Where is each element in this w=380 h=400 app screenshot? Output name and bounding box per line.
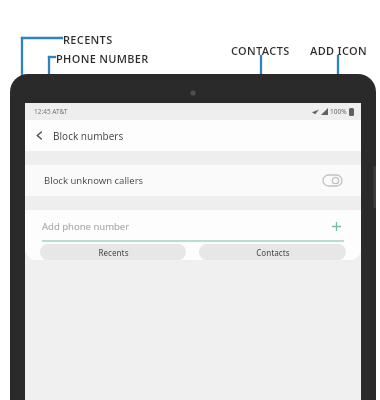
staticText: Block numbers <box>53 129 124 143</box>
staticText: Contacts <box>256 247 290 258</box>
staticText: Block unknown callers <box>44 174 144 187</box>
staticText: Add phone number <box>42 220 130 233</box>
button[interactable]: Add phone number <box>42 210 329 243</box>
staticText: Recents <box>98 247 129 258</box>
button[interactable]: Recents <box>40 244 186 260</box>
button[interactable]: Contacts <box>199 244 346 260</box>
staticText: 12:45 AT&T <box>34 107 68 116</box>
button[interactable]: Block unknown callers toggle <box>323 175 342 186</box>
button[interactable]: Block unknown callers <box>25 165 361 196</box>
staticText: 100% <box>330 107 347 116</box>
button[interactable]: Back <box>25 120 361 151</box>
staticText: CONTACTS <box>231 43 290 58</box>
staticText: ADD ICON <box>310 43 368 58</box>
staticText: RECENTS <box>63 32 113 47</box>
button[interactable]: Back <box>25 120 53 151</box>
staticText: PHONE NUMBER <box>56 51 149 66</box>
button[interactable]: Add <box>329 219 344 234</box>
